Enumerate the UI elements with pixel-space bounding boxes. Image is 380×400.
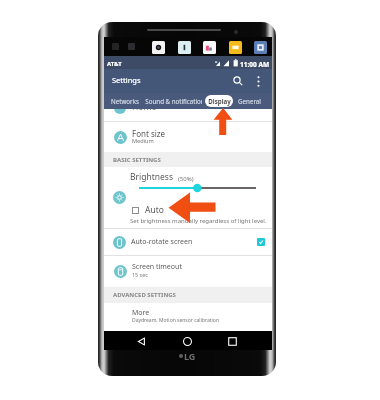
button[interactable]: Brightness [104, 167, 272, 228]
staticText: Auto-rotate screen [131, 237, 193, 247]
staticText: More [132, 308, 150, 318]
button[interactable]: Home [104, 109, 272, 121]
button[interactable]: More options [250, 73, 266, 89]
button[interactable]: More [104, 303, 272, 331]
button[interactable]: Display [205, 93, 233, 109]
button[interactable]: Auto-rotate screen [104, 229, 272, 255]
staticText: Set brightness manually regardless of li… [130, 217, 267, 225]
staticText: (50%) [178, 175, 194, 183]
button[interactable]: Recent apps [223, 332, 241, 350]
button[interactable]: Screen timeout [104, 256, 272, 287]
staticText: LG [184, 350, 196, 362]
button[interactable]: Back [132, 332, 150, 350]
button[interactable]: Font size [104, 122, 272, 152]
staticText: ADVANCED SETTINGS [113, 291, 176, 299]
staticText: 11:00 AM [240, 60, 270, 69]
staticText: Display [208, 97, 231, 105]
staticText: Sound & notifications [145, 97, 202, 105]
button[interactable]: Networks [106, 93, 143, 109]
button[interactable]: Sound & notifications [145, 93, 202, 109]
staticText: Medium [132, 137, 154, 145]
staticText: Settings [112, 75, 141, 85]
staticText: Screen timeout [132, 262, 182, 272]
staticText: Networks [111, 97, 139, 105]
button[interactable]: General [235, 93, 264, 109]
button[interactable]: Home [178, 332, 196, 350]
staticText: Auto [145, 204, 164, 216]
staticText: General [238, 97, 261, 105]
staticText: Home [132, 109, 157, 113]
staticText: Daydream, Motion sensor calibration [132, 317, 219, 324]
staticText: 15 sec [132, 271, 148, 278]
button[interactable]: Search [230, 73, 246, 89]
staticText: BASIC SETTINGS [113, 156, 161, 164]
staticText: Font size [132, 128, 166, 139]
staticText: Brightness [130, 171, 173, 183]
staticText: AT&T [107, 60, 122, 68]
